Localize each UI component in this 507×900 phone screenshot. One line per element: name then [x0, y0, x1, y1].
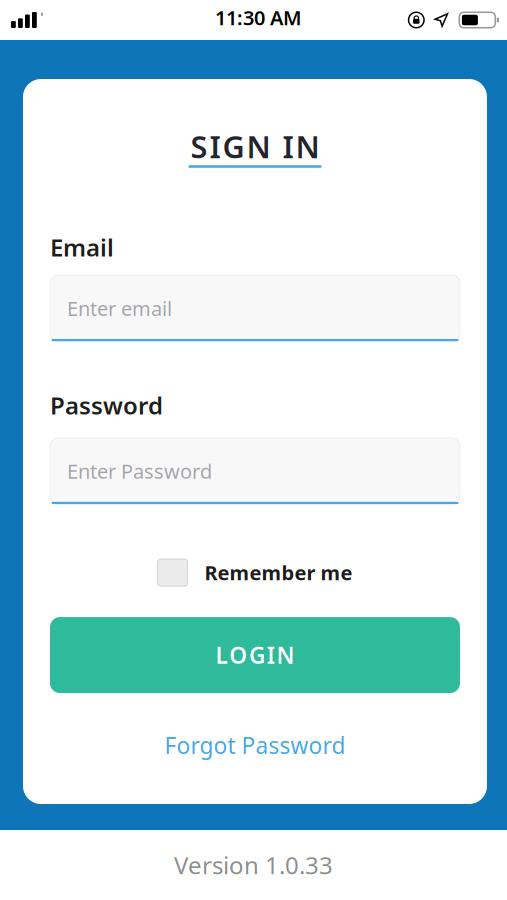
- staticText: Enter email: [67, 295, 172, 321]
- button[interactable]: Enter email: [50, 275, 460, 341]
- staticText: Enter Password: [67, 458, 212, 484]
- staticText: LOGIN: [215, 640, 295, 670]
- staticText: Remember me: [204, 559, 352, 586]
- staticText: SIGN IN: [190, 126, 319, 167]
- button[interactable]: LOGIN: [50, 617, 460, 693]
- staticText: Password: [50, 389, 163, 421]
- button[interactable]: Forgot Password: [164, 730, 345, 760]
- staticText: Forgot Password: [164, 730, 345, 760]
- staticText: 11:30 AM: [215, 4, 302, 31]
- staticText: Version 1.0.33: [174, 849, 333, 881]
- button[interactable]: Enter Password: [50, 438, 460, 504]
- staticText: Email: [50, 231, 114, 263]
- button[interactable]: Remember me: [157, 559, 352, 586]
